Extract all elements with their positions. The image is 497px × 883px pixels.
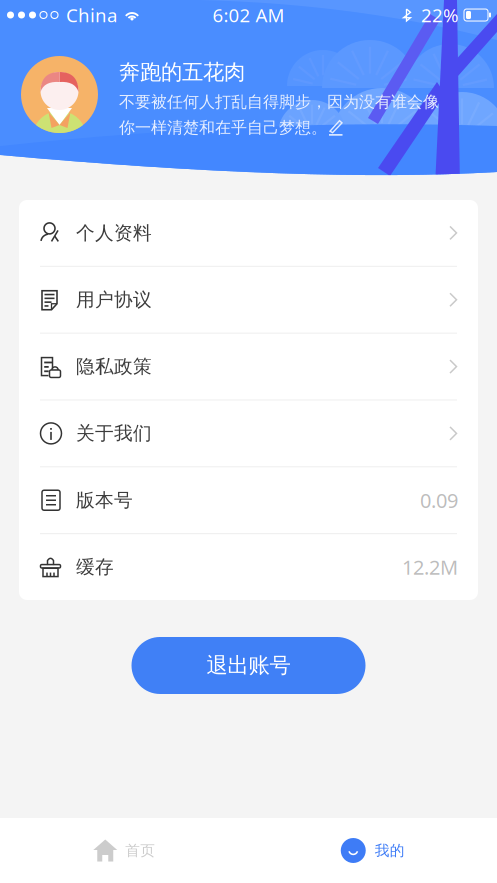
staticText: 22% [421, 3, 459, 27]
staticText: 隐私政策 [76, 355, 152, 378]
staticText: 缓存 [76, 556, 114, 578]
button[interactable]: 版本号 [19, 467, 478, 533]
staticText: 退出账号 [206, 652, 290, 679]
staticText: China [66, 3, 117, 27]
button[interactable]: 我的 [248, 818, 497, 883]
staticText: 12.2M [402, 554, 458, 580]
button[interactable]: 关于我们 [19, 400, 478, 466]
staticText: 奔跑的五花肉 [119, 59, 245, 85]
staticText: 关于我们 [76, 422, 152, 445]
button[interactable]: 缓存 [19, 534, 478, 600]
staticText: 0.09 [420, 487, 458, 514]
staticText: 6:02 AM [212, 3, 284, 27]
button[interactable]: 退出账号 [131, 637, 365, 694]
button[interactable]: 首页 [0, 818, 248, 883]
staticText: 用户协议 [76, 288, 152, 311]
staticText: 我的 [375, 841, 405, 859]
button[interactable]: 隐私政策 [19, 334, 478, 399]
staticText: 不要被任何人打乱自得脚步，因为没有谁会像 [119, 92, 439, 112]
button[interactable]: 用户协议 [19, 267, 478, 333]
staticText: 版本号 [76, 489, 133, 512]
staticText: 首页 [125, 841, 155, 859]
button[interactable]: 个人资料 [19, 200, 478, 266]
staticText: 你一样清楚和在乎自己梦想。 [119, 118, 327, 138]
staticText: 个人资料 [76, 221, 152, 244]
